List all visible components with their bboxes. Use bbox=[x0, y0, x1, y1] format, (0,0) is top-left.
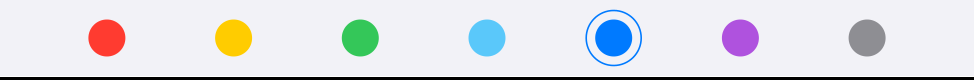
button[interactable]: Green bbox=[333, 10, 388, 65]
button[interactable]: Red bbox=[79, 10, 134, 65]
button[interactable]: Light Blue bbox=[459, 10, 514, 65]
button[interactable]: Purple bbox=[713, 10, 768, 65]
button[interactable]: Gray bbox=[840, 10, 895, 65]
button[interactable]: Blue bbox=[586, 10, 641, 65]
button[interactable]: Yellow bbox=[206, 10, 261, 65]
